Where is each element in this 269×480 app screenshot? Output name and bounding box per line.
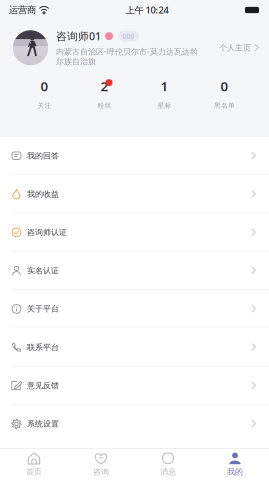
staticText: 消息 bbox=[160, 467, 176, 477]
button[interactable]: 个人主页 bbox=[219, 43, 259, 53]
staticText: 联系平台 bbox=[27, 342, 59, 352]
staticText: 上午 10:24 bbox=[125, 4, 168, 16]
staticText: 1 bbox=[160, 77, 168, 95]
staticText: 我的 bbox=[227, 467, 243, 477]
staticText: 咨询师认证 bbox=[27, 227, 67, 237]
button[interactable]: 1 bbox=[134, 80, 194, 110]
staticText: 0 bbox=[40, 77, 48, 95]
button[interactable]: 咨询 bbox=[67, 449, 134, 480]
staticText: 系统设置 bbox=[27, 419, 59, 429]
staticText: 内蒙古自治区-呼伦贝尔市-莫力达瓦达斡尔族自治旗 bbox=[56, 46, 198, 67]
staticText: 我的回答 bbox=[27, 151, 59, 161]
button[interactable]: 消息 bbox=[134, 449, 201, 480]
button[interactable]: 关于平台 bbox=[0, 290, 269, 328]
staticText: 2 bbox=[100, 77, 108, 95]
staticText: 粉丝 bbox=[97, 101, 111, 110]
staticText: 关注 bbox=[37, 101, 51, 110]
button[interactable]: 咨询师认证 bbox=[0, 214, 269, 251]
button[interactable]: 我的回答 bbox=[0, 137, 269, 174]
button[interactable]: 2 bbox=[74, 80, 134, 110]
button[interactable]: 意见反馈 bbox=[0, 367, 269, 404]
button[interactable]: 0 bbox=[14, 80, 74, 110]
button[interactable]: 首页 bbox=[0, 449, 67, 480]
staticText: 咨询 bbox=[93, 467, 109, 477]
staticText: 咨询师01 bbox=[56, 29, 101, 43]
staticText: 0 bbox=[220, 77, 228, 95]
button[interactable]: 系统设置 bbox=[0, 405, 269, 443]
staticText: 运营商 bbox=[9, 4, 36, 16]
staticText: 实名认证 bbox=[27, 266, 59, 275]
button[interactable]: 实名认证 bbox=[0, 252, 269, 289]
staticText: 我的收益 bbox=[27, 189, 59, 199]
button[interactable]: 我的收益 bbox=[0, 175, 269, 213]
button[interactable]: 0 bbox=[194, 80, 254, 110]
staticText: 006 bbox=[122, 32, 134, 41]
staticText: 黑名单 bbox=[214, 101, 235, 110]
staticText: 首页 bbox=[26, 467, 42, 477]
staticText: 关于平台 bbox=[27, 304, 59, 314]
staticText: 意见反馈 bbox=[27, 381, 59, 390]
button[interactable]: 联系平台 bbox=[0, 328, 269, 366]
staticText: 个人主页 bbox=[219, 43, 251, 53]
staticText: 星标 bbox=[157, 101, 171, 110]
button[interactable]: 我的 bbox=[201, 449, 268, 480]
